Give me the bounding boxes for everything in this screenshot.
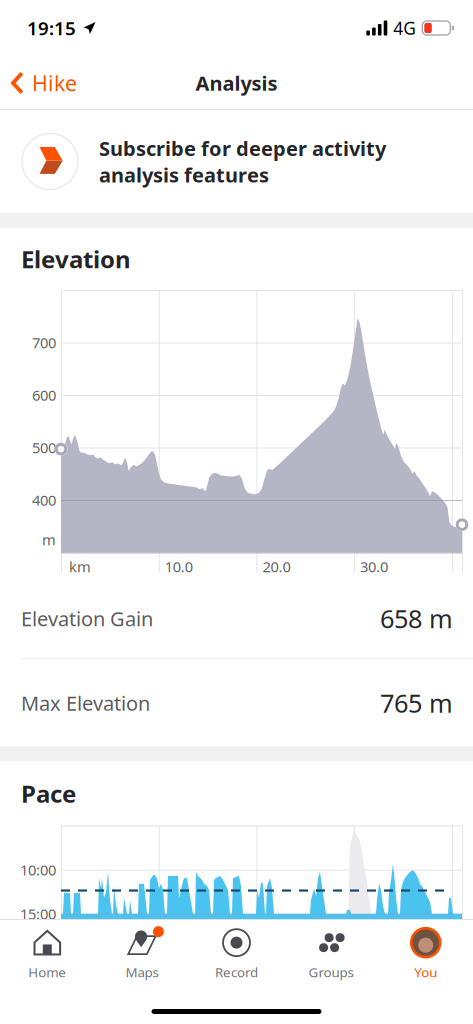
staticText: Elevation (21, 243, 131, 275)
staticText: 658 m (380, 602, 453, 635)
staticText: 10:00 (20, 860, 56, 879)
staticText: Analysis (195, 70, 277, 96)
button[interactable]: Elevation Gain (0, 578, 473, 658)
staticText: 500 (32, 438, 56, 457)
staticText: Pace (21, 778, 76, 809)
staticText: 15:00 (20, 904, 56, 924)
staticText: m (42, 530, 56, 549)
staticText: You (414, 963, 437, 981)
staticText: Groups (309, 963, 354, 981)
button[interactable]: Groups (284, 920, 378, 988)
staticText: Hike (32, 69, 77, 97)
staticText: Elevation Gain (21, 605, 153, 632)
staticText: 4G (393, 16, 416, 39)
button[interactable]: Record (189, 920, 284, 988)
staticText: 20.0 (262, 557, 290, 576)
staticText: 700 (32, 333, 56, 352)
button[interactable]: Maps (95, 920, 189, 988)
staticText: 19:15 (27, 16, 76, 40)
button[interactable]: Hike (0, 59, 89, 107)
button[interactable]: Max Elevation (0, 659, 473, 746)
staticText: 30.0 (360, 557, 388, 576)
button[interactable]: You (378, 920, 473, 988)
staticText: Home (28, 963, 66, 981)
staticText: Record (215, 963, 258, 981)
staticText: 765 m (380, 686, 453, 720)
staticText: km (69, 557, 91, 576)
staticText: 600 (32, 385, 56, 405)
staticText: Maps (125, 963, 158, 981)
button[interactable]: Subscribe for deeper activity analysis f… (0, 110, 473, 213)
staticText: 10.0 (165, 557, 193, 576)
staticText: Subscribe for deeper activity analysis f… (99, 135, 386, 188)
staticText: Max Elevation (21, 690, 150, 716)
button[interactable]: Home (0, 920, 95, 988)
staticText: 400 (32, 490, 56, 510)
